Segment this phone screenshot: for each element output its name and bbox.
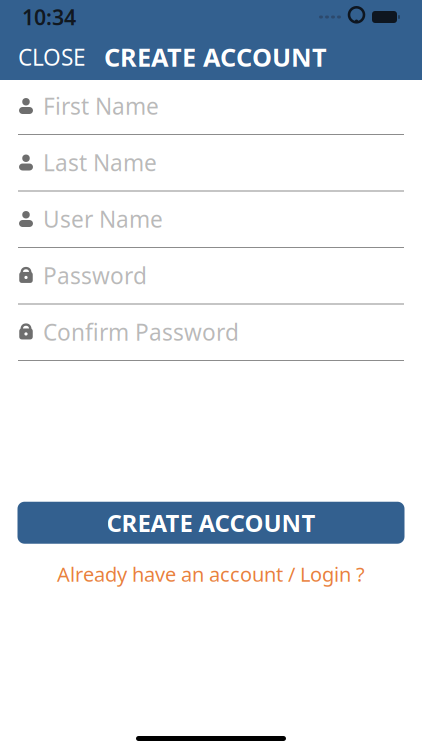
staticText: CLOSE bbox=[18, 42, 86, 72]
staticText: Last Name bbox=[43, 147, 157, 177]
staticText: User Name bbox=[43, 204, 163, 234]
staticText: Confirm Password bbox=[43, 317, 239, 347]
staticText: First Name bbox=[43, 91, 159, 121]
staticText: CREATE ACCOUNT bbox=[106, 507, 315, 539]
staticText: CREATE ACCOUNT bbox=[104, 40, 327, 74]
button[interactable]: Already have an account / Login ? bbox=[45, 553, 377, 595]
staticText: Already have an account / Login ? bbox=[57, 561, 365, 587]
button[interactable]: CREATE ACCOUNT bbox=[17, 502, 404, 544]
button[interactable]: CLOSE bbox=[0, 35, 104, 79]
staticText: 10:34 bbox=[22, 3, 76, 31]
staticText: Password bbox=[43, 260, 147, 290]
